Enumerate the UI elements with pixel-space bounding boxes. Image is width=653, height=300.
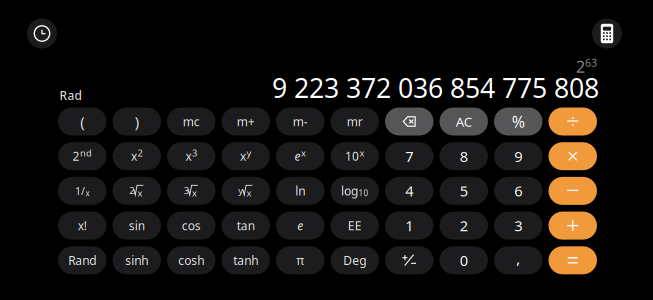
button[interactable]: e xyxy=(276,212,324,240)
button[interactable]: 7 xyxy=(385,142,433,170)
staticText: 9 223 372 036 854 775 808 xyxy=(272,70,599,105)
button[interactable]: y root of x xyxy=(221,177,270,205)
staticText: mr xyxy=(347,113,363,129)
staticText: 9 xyxy=(514,146,522,166)
button[interactable]: , xyxy=(494,246,542,274)
button[interactable]: 3 root of x xyxy=(167,177,215,205)
staticText: ln xyxy=(295,183,305,199)
staticText: 3 xyxy=(184,184,189,197)
button[interactable]: 1/x xyxy=(58,177,106,205)
button[interactable]: ) xyxy=(112,107,161,135)
button[interactable]: Equals xyxy=(548,246,597,274)
button[interactable]: 2 root of x xyxy=(112,177,161,205)
button[interactable]: 0 xyxy=(439,246,488,274)
button[interactable]: x2 xyxy=(112,142,161,170)
staticText: Rad xyxy=(59,87,81,103)
staticText: sinh xyxy=(125,252,148,268)
button[interactable]: Rand xyxy=(58,246,106,274)
button[interactable]: tanh xyxy=(221,246,270,274)
button[interactable]: 2nd xyxy=(58,142,106,170)
staticText: x xyxy=(192,187,197,199)
button[interactable]: 9 xyxy=(494,142,542,170)
button[interactable]: 8 xyxy=(439,142,488,170)
button[interactable]: x! xyxy=(58,212,106,240)
staticText: 2 xyxy=(129,184,134,197)
button[interactable]: 4 xyxy=(385,177,433,205)
button[interactable]: Plus minus xyxy=(385,246,433,274)
button[interactable]: 1 xyxy=(385,212,433,240)
staticText: nd xyxy=(80,147,92,159)
staticText: 7 xyxy=(405,146,413,166)
button[interactable]: mc xyxy=(167,107,215,135)
staticText: 2 xyxy=(460,216,468,235)
staticText: π xyxy=(296,252,304,268)
staticText: 3 xyxy=(192,147,197,159)
staticText: 10 xyxy=(358,188,368,198)
button[interactable]: Delete xyxy=(385,107,433,135)
staticText: 0 xyxy=(460,251,468,270)
staticText: 10 xyxy=(345,148,359,164)
button[interactable]: π xyxy=(276,246,324,274)
button[interactable]: Subtract xyxy=(548,177,597,205)
button[interactable]: EE xyxy=(330,212,379,240)
button[interactable]: ex xyxy=(276,142,324,170)
staticText: ( xyxy=(80,112,84,131)
button[interactable]: 10x xyxy=(330,142,379,170)
staticText: log xyxy=(341,183,358,199)
button[interactable]: xy xyxy=(221,142,270,170)
staticText: x xyxy=(131,148,137,164)
button[interactable]: sinh xyxy=(112,246,161,274)
button[interactable]: % xyxy=(494,107,542,135)
staticText: 1/ xyxy=(75,184,85,198)
button[interactable]: 5 xyxy=(439,177,488,205)
button[interactable]: ( xyxy=(58,107,106,135)
staticText: x! xyxy=(78,218,87,233)
button[interactable]: ln xyxy=(276,177,324,205)
staticText: 6 xyxy=(514,181,522,201)
staticText: 2 xyxy=(137,147,142,159)
staticText: ) xyxy=(135,112,139,131)
staticText: cos xyxy=(182,218,201,233)
staticText: 1 xyxy=(405,216,413,235)
button[interactable]: x3 xyxy=(167,142,215,170)
button[interactable]: 6 xyxy=(494,177,542,205)
staticText: 63 xyxy=(585,55,597,70)
staticText: x xyxy=(301,147,306,159)
button[interactable]: Divide xyxy=(548,107,597,135)
staticText: x xyxy=(138,187,143,199)
staticText: mc xyxy=(183,113,200,129)
staticText: tanh xyxy=(233,252,258,268)
staticText: AC xyxy=(456,113,472,130)
staticText: x xyxy=(85,188,89,198)
staticText: , xyxy=(516,249,520,268)
staticText: x xyxy=(240,148,246,164)
staticText: e xyxy=(297,218,303,233)
button[interactable]: mr xyxy=(330,107,379,135)
button[interactable]: m+ xyxy=(221,107,270,135)
button[interactable]: m- xyxy=(276,107,324,135)
button[interactable]: History xyxy=(27,18,57,48)
button[interactable]: tan xyxy=(221,212,270,240)
staticText: EE xyxy=(348,218,362,233)
button[interactable]: Deg xyxy=(330,246,379,274)
staticText: tan xyxy=(237,218,255,233)
button[interactable]: Multiply xyxy=(548,142,597,170)
button[interactable]: cosh xyxy=(167,246,215,274)
staticText: 2 xyxy=(72,148,79,164)
staticText: 4 xyxy=(405,181,413,201)
button[interactable]: AC xyxy=(439,107,488,135)
button[interactable]: 3 xyxy=(494,212,542,240)
button[interactable]: Add xyxy=(548,212,597,240)
button[interactable]: 2 xyxy=(439,212,488,240)
staticText: m+ xyxy=(237,113,255,129)
staticText: 2 xyxy=(576,56,585,77)
staticText: cosh xyxy=(178,252,204,268)
staticText: 5 xyxy=(460,181,468,201)
button[interactable]: sin xyxy=(112,212,161,240)
staticText: Deg xyxy=(343,252,366,268)
staticText: y xyxy=(246,147,251,159)
button[interactable]: Calculator mode xyxy=(592,18,622,48)
button[interactable]: cos xyxy=(167,212,215,240)
button[interactable]: log10 xyxy=(330,177,379,205)
staticText: sin xyxy=(129,218,145,233)
